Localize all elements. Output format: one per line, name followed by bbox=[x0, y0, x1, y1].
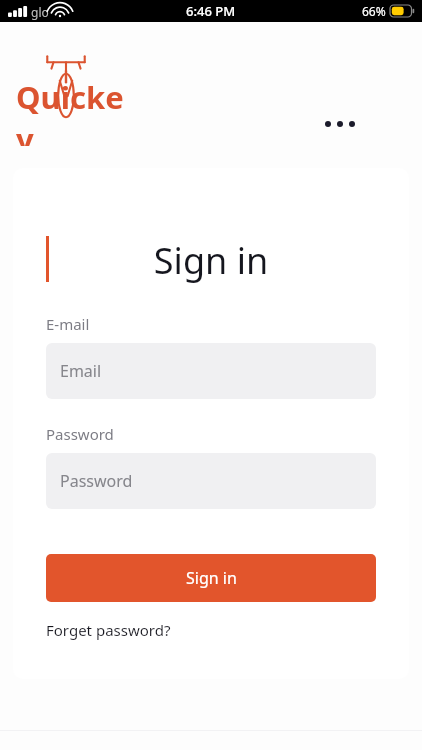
button[interactable]: Password bbox=[46, 453, 376, 509]
staticText: Sign in bbox=[13, 236, 409, 285]
staticText: Password bbox=[60, 470, 133, 492]
staticText: E-mail bbox=[46, 314, 90, 334]
staticText: Forget password? bbox=[46, 620, 171, 640]
staticText: 66% bbox=[362, 3, 386, 19]
staticText: Sign in bbox=[186, 567, 237, 589]
button[interactable]: Email bbox=[46, 343, 376, 399]
staticText: Password bbox=[46, 424, 114, 444]
button[interactable]: More options bbox=[312, 105, 368, 143]
staticText: 6:46 PM bbox=[186, 2, 236, 20]
staticText: Email bbox=[60, 360, 102, 382]
staticText: Quickey bbox=[16, 76, 136, 146]
button[interactable]: Forget password? bbox=[46, 620, 171, 640]
staticText: glo bbox=[31, 4, 49, 20]
button[interactable]: Sign in bbox=[46, 554, 376, 602]
